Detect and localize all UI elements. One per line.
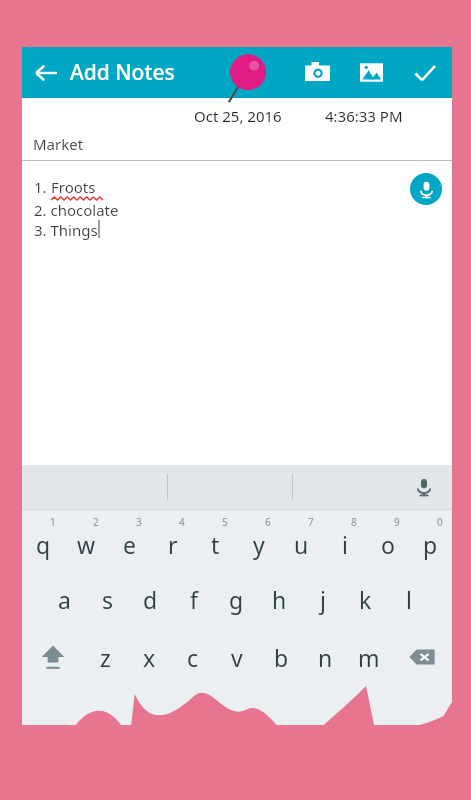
button[interactable]: h — [258, 570, 301, 628]
staticText: 8 — [351, 515, 357, 529]
staticText: Oct 25, 2016 — [194, 106, 282, 126]
staticText: c — [187, 642, 199, 673]
button[interactable]: c — [171, 628, 215, 686]
button[interactable]: z — [83, 628, 127, 686]
button[interactable]: d — [129, 570, 172, 628]
staticText: 2 — [93, 515, 99, 529]
button[interactable]: n — [303, 628, 347, 686]
staticText: u — [294, 529, 309, 560]
button[interactable]: 1 — [22, 510, 65, 570]
button[interactable]: g — [215, 570, 258, 628]
staticText: g — [229, 584, 244, 615]
staticText: 4:36:33 PM — [325, 106, 403, 126]
staticText: 1 — [50, 515, 56, 529]
staticText: k — [359, 584, 372, 615]
staticText: o — [381, 529, 395, 560]
staticText: 7 — [308, 515, 314, 529]
staticText: Market — [33, 134, 84, 154]
button[interactable]: 7 — [280, 510, 323, 570]
staticText: r — [168, 529, 178, 560]
button[interactable]: s — [86, 570, 129, 628]
staticText: 3. Things — [34, 220, 98, 240]
staticText: d — [143, 584, 158, 615]
button[interactable]: a — [43, 570, 86, 628]
button[interactable]: 2 — [65, 510, 108, 570]
button[interactable]: Voice input — [410, 173, 442, 205]
staticText: e — [123, 529, 136, 560]
button[interactable]: v — [215, 628, 259, 686]
button[interactable]: Voice typing — [408, 471, 440, 503]
staticText: 3 — [136, 515, 142, 529]
staticText: i — [342, 529, 348, 560]
button[interactable]: f — [172, 570, 215, 628]
staticText: 4 — [179, 515, 185, 529]
button[interactable]: 5 — [194, 510, 237, 570]
button[interactable]: Take photo — [290, 47, 344, 98]
staticText: x — [143, 642, 156, 673]
button[interactable]: Save note — [398, 47, 452, 98]
staticText: y — [253, 529, 265, 560]
staticText: v — [231, 642, 243, 673]
button[interactable]: Backspace — [391, 628, 452, 686]
button[interactable]: m — [347, 628, 391, 686]
button[interactable]: 9 — [366, 510, 409, 570]
staticText: w — [77, 529, 96, 560]
staticText: 6 — [265, 515, 271, 529]
button[interactable]: 4 — [151, 510, 194, 570]
staticText: 0 — [437, 515, 443, 529]
staticText: 9 — [394, 515, 400, 529]
staticText: l — [406, 584, 412, 615]
staticText: 5 — [222, 515, 228, 529]
button[interactable]: 0 — [409, 510, 452, 570]
button[interactable]: b — [259, 628, 303, 686]
button[interactable]: 6 — [237, 510, 280, 570]
staticText: z — [100, 642, 111, 673]
staticText: p — [423, 529, 438, 560]
button[interactable]: 8 — [323, 510, 366, 570]
button[interactable]: j — [301, 570, 344, 628]
staticText: m — [358, 642, 380, 673]
button[interactable]: Pick image — [344, 47, 398, 98]
button[interactable]: Back — [22, 49, 70, 97]
staticText: t — [211, 529, 220, 560]
button[interactable]: Shift — [22, 628, 83, 686]
staticText: 1. — [34, 177, 51, 197]
staticText: 2. chocolate — [34, 200, 119, 220]
staticText: Froots — [51, 177, 96, 197]
staticText: Add Notes — [70, 58, 175, 87]
staticText: j — [320, 584, 326, 615]
button[interactable]: 3 — [108, 510, 151, 570]
staticText: b — [274, 642, 289, 673]
staticText: a — [58, 584, 71, 615]
staticText: s — [102, 584, 114, 615]
staticText: f — [190, 584, 198, 615]
staticText: q — [36, 529, 51, 560]
staticText: h — [272, 584, 287, 615]
button[interactable]: l — [387, 570, 430, 628]
button[interactable]: x — [127, 628, 171, 686]
staticText: n — [318, 642, 333, 673]
button[interactable]: k — [344, 570, 387, 628]
